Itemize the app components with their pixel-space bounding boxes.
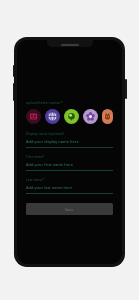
button[interactable]: Avatar 5	[102, 109, 113, 124]
staticText: Last name*	[26, 177, 45, 182]
staticText: Add your last name here	[26, 185, 73, 190]
button[interactable]: First name*	[26, 154, 113, 171]
staticText: First name*	[26, 154, 45, 159]
staticText: Add your first name here	[26, 162, 73, 167]
button[interactable]: Avatar 3	[64, 109, 79, 124]
button[interactable]: Display name (optional)	[26, 131, 113, 148]
staticText: Display name (optional)	[26, 131, 64, 136]
button[interactable]: Avatar 2	[45, 109, 60, 124]
button[interactable]: Save	[26, 203, 113, 215]
button[interactable]: Avatar 1	[26, 109, 41, 124]
button[interactable]: Last name*	[26, 177, 113, 194]
staticText: Add your display name here	[26, 139, 79, 144]
staticText: upload/select avatar*	[26, 100, 63, 105]
button[interactable]: Avatar 4	[83, 109, 98, 124]
staticText: Save	[65, 207, 74, 212]
